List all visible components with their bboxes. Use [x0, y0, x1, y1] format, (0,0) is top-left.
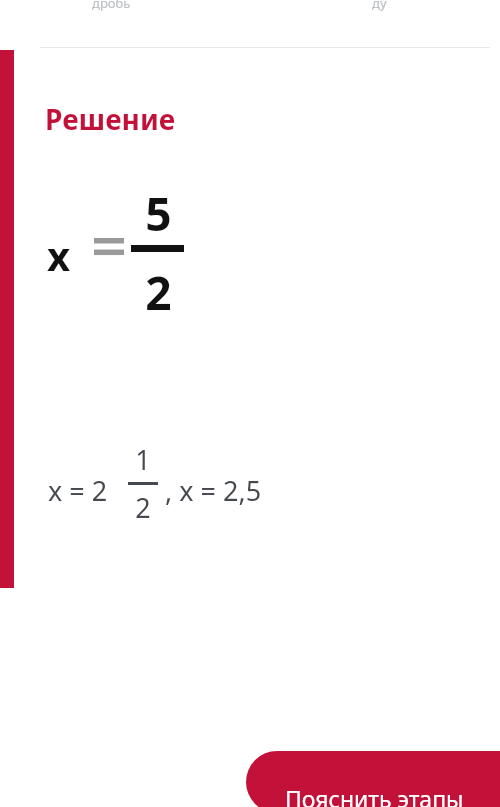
- staticText: Пояснить этапы: [285, 783, 464, 807]
- staticText: Решение: [45, 100, 176, 138]
- staticText: x: [47, 228, 71, 282]
- staticText: 2: [135, 489, 151, 521]
- staticText: 1: [135, 441, 151, 473]
- staticText: , x = 2,5: [165, 472, 262, 509]
- staticText: ду: [372, 0, 387, 12]
- staticText: 2: [145, 261, 172, 317]
- staticText: 5: [145, 182, 172, 238]
- staticText: x = 2: [48, 472, 108, 509]
- button[interactable]: Пояснить этапы: [246, 751, 500, 807]
- staticText: дробь: [92, 0, 131, 12]
